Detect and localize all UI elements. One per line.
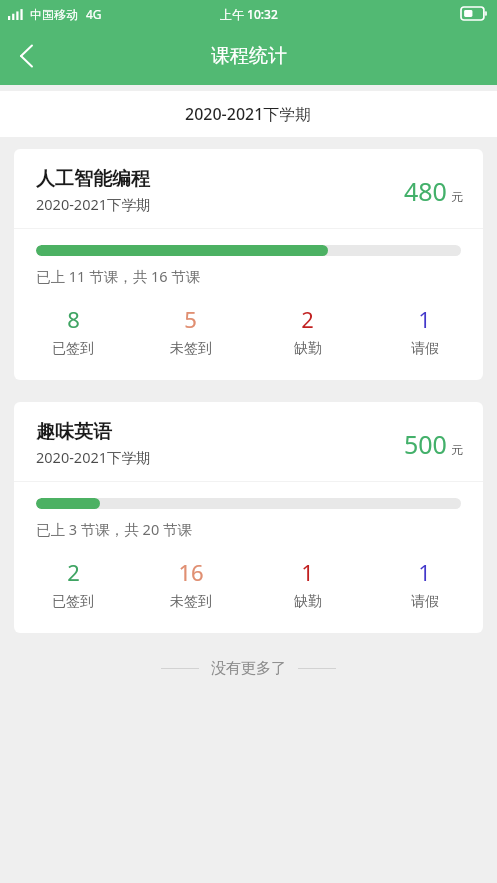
- staticText: 请假: [411, 340, 439, 358]
- staticText: 1: [301, 557, 314, 587]
- staticText: 2020-2021下学期: [36, 447, 151, 467]
- staticText: 课程统计: [211, 44, 287, 68]
- staticText: 中国移动: [30, 7, 78, 22]
- button[interactable]: 2: [14, 557, 132, 611]
- staticText: 上午 10:32: [220, 6, 278, 22]
- staticText: 缺勤: [294, 593, 322, 611]
- staticText: 2: [67, 557, 80, 587]
- button[interactable]: Back: [0, 30, 52, 82]
- staticText: 2020-2021下学期: [185, 103, 312, 125]
- button[interactable]: 1: [366, 304, 483, 358]
- staticText: 16: [178, 557, 204, 587]
- staticText: 人工智能编程: [36, 167, 150, 191]
- staticText: 2: [301, 304, 314, 334]
- staticText: 未签到: [170, 593, 212, 611]
- staticText: 趣味英语: [36, 420, 112, 444]
- staticText: 480: [404, 174, 447, 208]
- button[interactable]: 2: [249, 304, 366, 358]
- staticText: 2020-2021下学期: [36, 194, 151, 214]
- button[interactable]: 1: [366, 557, 483, 611]
- staticText: 4G: [86, 6, 102, 22]
- staticText: 未签到: [170, 340, 212, 358]
- staticText: 没有更多了: [211, 659, 286, 678]
- button[interactable]: 16: [132, 557, 249, 611]
- staticText: 缺勤: [294, 340, 322, 358]
- staticText: 5: [184, 304, 197, 334]
- button[interactable]: 人工智能编程: [14, 149, 483, 380]
- button[interactable]: 5: [132, 304, 249, 358]
- staticText: 1: [418, 557, 431, 587]
- staticText: 500: [404, 427, 447, 461]
- staticText: 已签到: [52, 593, 94, 611]
- button[interactable]: 1: [249, 557, 366, 611]
- staticText: 已上 11 节课，共 16 节课: [36, 266, 201, 286]
- staticText: 1: [418, 304, 431, 334]
- staticText: 已签到: [52, 340, 94, 358]
- button[interactable]: 趣味英语: [14, 402, 483, 633]
- button[interactable]: 8: [14, 304, 132, 358]
- button[interactable]: 2020-2021下学期: [0, 91, 497, 137]
- staticText: 8: [67, 304, 80, 334]
- staticText: 已上 3 节课，共 20 节课: [36, 519, 192, 539]
- staticText: 元: [451, 442, 463, 457]
- staticText: 元: [451, 189, 463, 204]
- staticText: 请假: [411, 593, 439, 611]
